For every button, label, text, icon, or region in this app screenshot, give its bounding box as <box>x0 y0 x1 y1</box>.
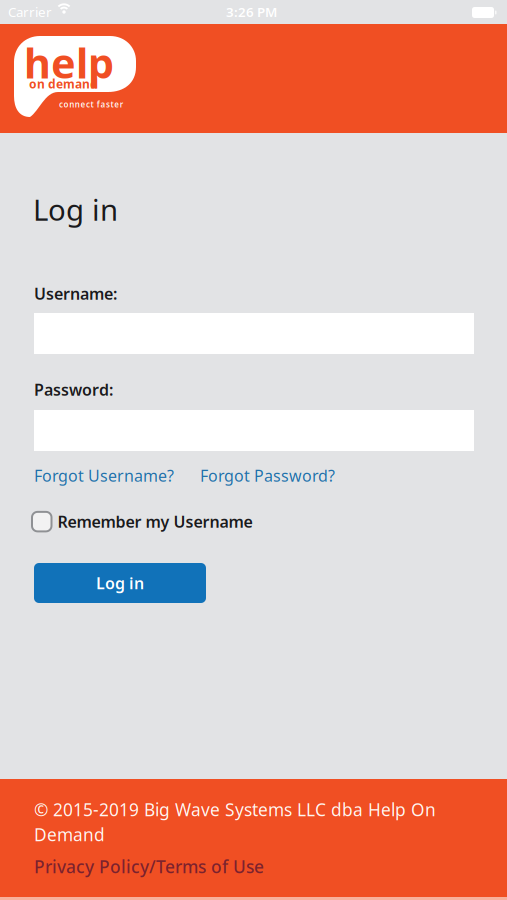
button[interactable]: Forgot Password? <box>200 465 335 486</box>
button[interactable]: Log in <box>34 563 206 603</box>
button[interactable]: Forgot Username? <box>34 465 174 486</box>
staticText: on demand <box>29 76 98 92</box>
staticText: Username: <box>34 283 117 304</box>
staticText: Forgot Password? <box>200 465 335 486</box>
staticText: Password: <box>34 379 113 400</box>
staticText: Demand <box>34 823 105 846</box>
staticText: Log in <box>96 572 144 594</box>
staticText: help <box>24 35 114 90</box>
button[interactable]: Privacy Policy/Terms of Use <box>34 855 264 878</box>
staticText: © 2015-2019 Big Wave Systems LLC dba Hel… <box>34 798 436 821</box>
staticText: Remember my Username <box>57 511 252 532</box>
staticText: Carrier <box>8 3 52 21</box>
staticText: Forgot Username? <box>34 465 174 486</box>
staticText: Privacy Policy/Terms of Use <box>34 855 264 878</box>
button[interactable]: Remember my Username <box>32 511 252 532</box>
staticText: connect faster <box>59 99 123 110</box>
staticText: Log in <box>33 190 118 229</box>
staticText: 3:26 PM <box>226 3 277 21</box>
